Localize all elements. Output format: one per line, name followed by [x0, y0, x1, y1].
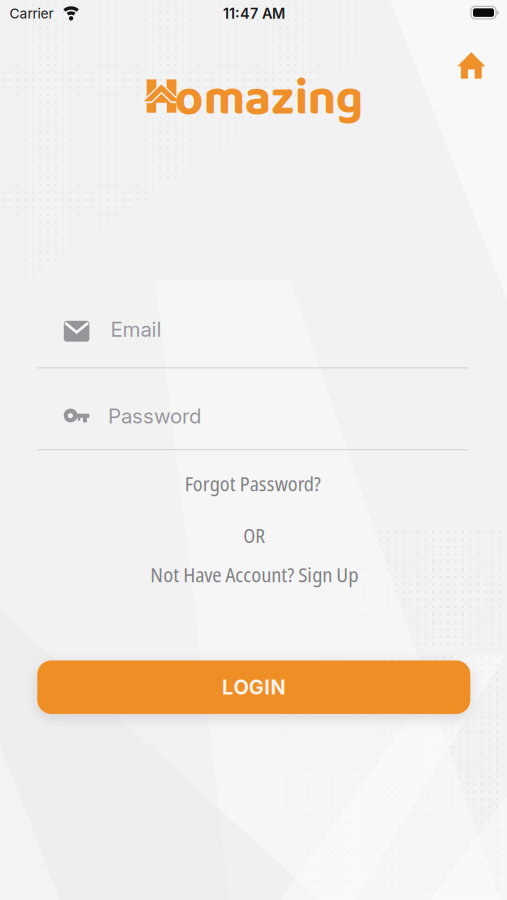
staticText: Carrier: [9, 5, 53, 22]
staticText: Email: [110, 317, 161, 342]
button[interactable]: Not Have Account? Sign Up: [150, 561, 358, 588]
staticText: Password: [108, 404, 202, 428]
staticText: OR: [243, 522, 265, 548]
button[interactable]: Password: [37, 386, 468, 450]
staticText: LOGIN: [222, 675, 285, 699]
button[interactable]: LOGIN: [37, 660, 470, 714]
staticText: Not Have Account? Sign Up: [150, 561, 358, 588]
button[interactable]: Forgot Password?: [185, 470, 321, 497]
staticText: 11:47 AM: [223, 5, 285, 22]
staticText: Forgot Password?: [185, 470, 321, 497]
button[interactable]: Email: [37, 304, 468, 368]
staticText: omazing: [175, 60, 364, 139]
button[interactable]: Home: [457, 52, 485, 79]
